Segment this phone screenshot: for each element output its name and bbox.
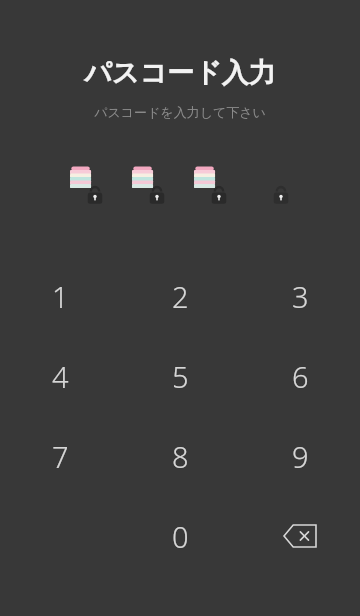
button[interactable]: 4	[0, 336, 120, 416]
button[interactable]: 0	[120, 496, 240, 576]
button[interactable]: 5	[120, 336, 240, 416]
button[interactable]: 2	[120, 256, 240, 336]
staticText: パスコード入力	[84, 56, 276, 90]
staticText: 5	[172, 357, 189, 396]
button[interactable]: 3	[240, 256, 360, 336]
button[interactable]: 8	[120, 416, 240, 496]
staticText: 3	[292, 277, 309, 316]
button[interactable]: 6	[240, 336, 360, 416]
staticText: 9	[292, 437, 309, 476]
staticText: 0	[172, 517, 189, 556]
button[interactable]: Backspace	[240, 496, 360, 576]
button[interactable]: 7	[0, 416, 120, 496]
button[interactable]: 9	[240, 416, 360, 496]
staticText: 7	[52, 437, 69, 476]
button[interactable]: 1	[0, 256, 120, 336]
staticText: 1	[52, 277, 69, 316]
staticText: 8	[172, 437, 189, 476]
staticText: 6	[292, 357, 309, 396]
staticText: パスコードを入力して下さい	[94, 104, 266, 120]
staticText: 4	[52, 357, 69, 396]
staticText: 2	[172, 277, 189, 316]
